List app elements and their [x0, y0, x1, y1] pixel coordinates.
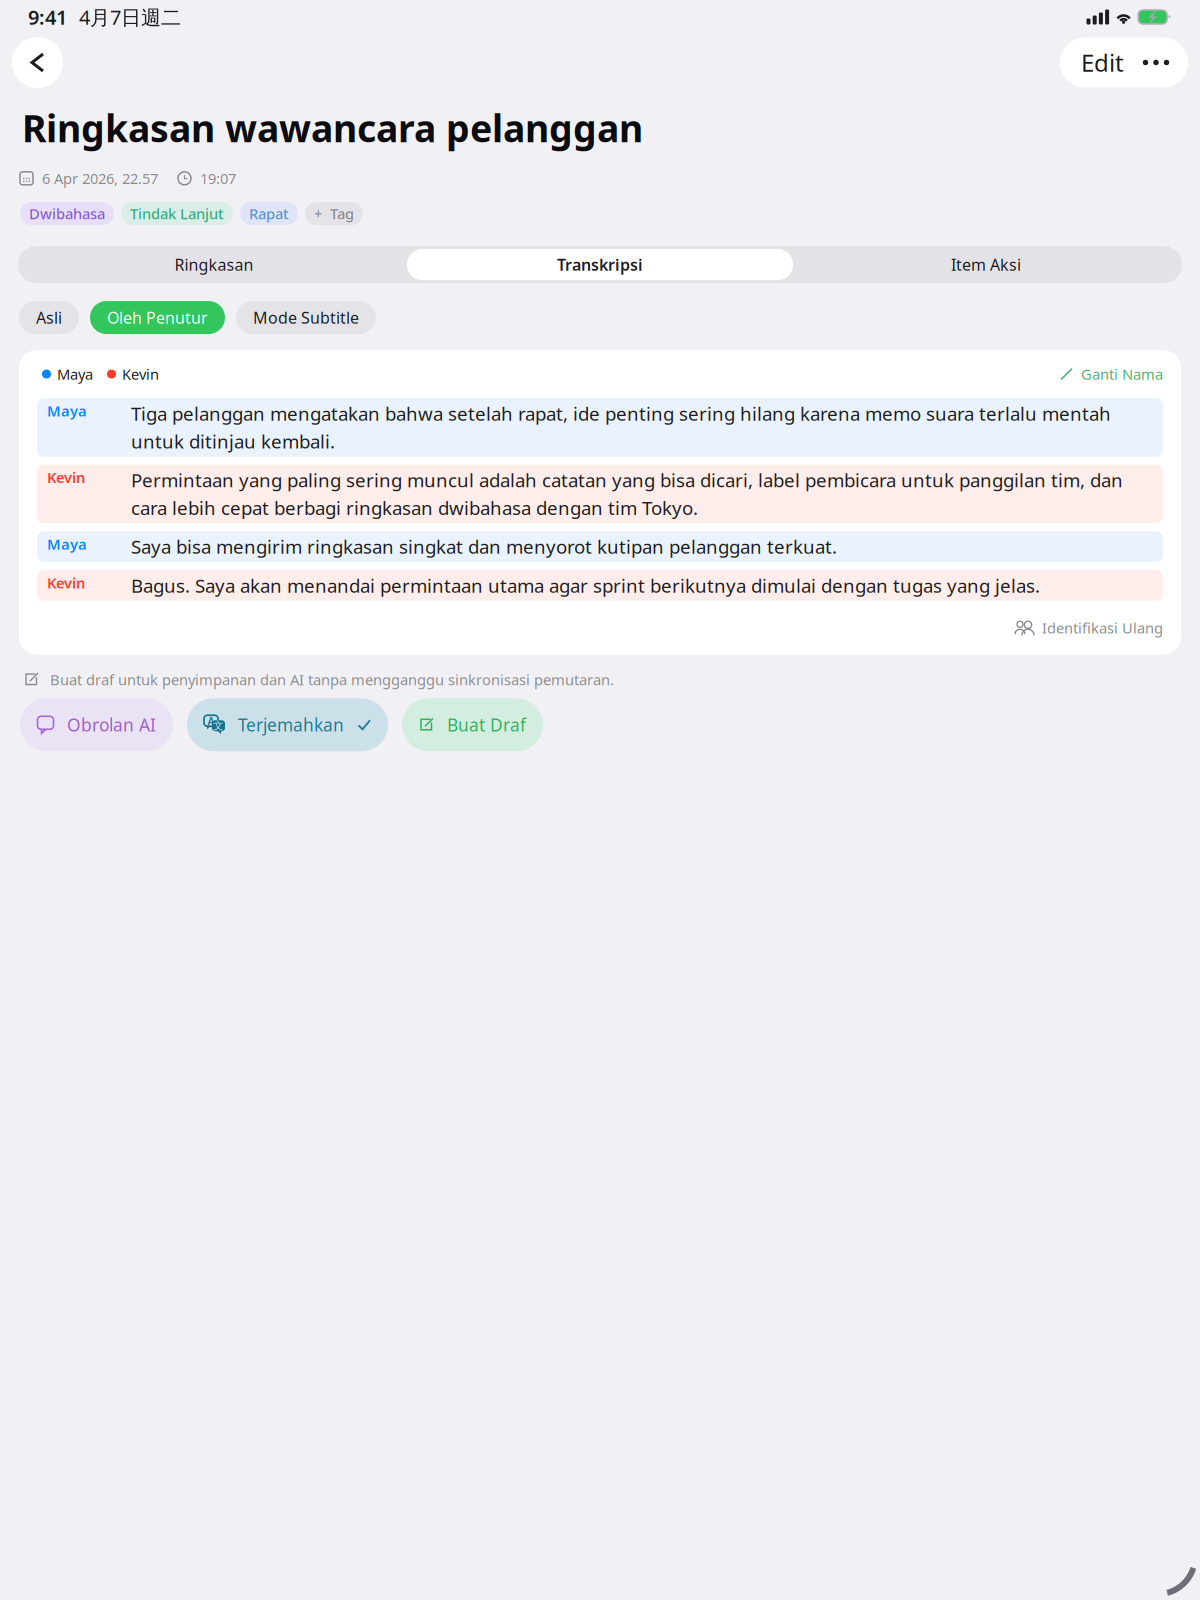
staticText: 6 Apr 2026, 22.57	[42, 169, 158, 188]
staticText: 9:41	[28, 4, 67, 30]
button[interactable]: Transkripsi	[407, 249, 793, 280]
button[interactable]: Item Aksi	[793, 249, 1179, 280]
staticText: Kevin	[47, 468, 85, 487]
button[interactable]: Dwibahasa	[20, 202, 114, 225]
staticText: Buat Draf	[447, 713, 526, 736]
staticText: Edit	[1081, 47, 1124, 78]
staticText: 文	[213, 719, 224, 732]
staticText: Maya	[47, 401, 87, 421]
button[interactable]: Obrolan AI	[20, 698, 173, 751]
staticText: Ganti Nama	[1081, 364, 1163, 384]
staticText: Obrolan AI	[67, 713, 156, 736]
button[interactable]: Mode Subtitle	[236, 301, 376, 334]
staticText: 4月7日週二	[79, 4, 181, 30]
staticText: A	[207, 714, 214, 728]
button[interactable]: Tindak Lanjut	[121, 202, 233, 225]
staticText: Tiga pelanggan mengatakan bahwa setelah …	[131, 401, 1111, 454]
staticText: Rapat	[249, 204, 289, 223]
staticText: Identifikasi Ulang	[1042, 618, 1163, 638]
button[interactable]: Buat Draf	[402, 698, 543, 751]
staticText: Maya	[57, 364, 93, 384]
button[interactable]: + Tag	[305, 202, 363, 225]
staticText: Dwibahasa	[29, 204, 105, 223]
staticText: 19:07	[200, 169, 236, 188]
staticText: Terjemahkan	[238, 713, 344, 736]
button[interactable]: Oleh Penutur	[90, 301, 225, 334]
staticText: Ringkasan	[174, 254, 253, 275]
button[interactable]: Rapat	[240, 202, 298, 225]
staticText: Mode Subtitle	[253, 307, 359, 328]
staticText: Asli	[36, 307, 62, 328]
staticText: Item Aksi	[951, 254, 1021, 275]
staticText: Permintaan yang paling sering muncul ada…	[131, 468, 1123, 520]
staticText: Maya	[47, 534, 87, 554]
button[interactable]: More options	[1140, 37, 1188, 87]
staticText: Saya bisa mengirim ringkasan singkat dan…	[131, 534, 837, 559]
button[interactable]: Ganti Nama	[1059, 364, 1163, 384]
staticText: Ringkasan wawancara pelanggan	[22, 103, 643, 153]
button[interactable]: A	[187, 698, 388, 751]
button[interactable]: Edit	[1060, 37, 1140, 87]
button[interactable]: Asli	[19, 301, 79, 334]
staticText: Tindak Lanjut	[130, 204, 224, 223]
staticText: Bagus. Saya akan menandai permintaan uta…	[131, 573, 1040, 598]
staticText: Oleh Penutur	[107, 307, 208, 328]
staticText: Kevin	[47, 573, 85, 592]
button[interactable]: Identifikasi Ulang	[1014, 618, 1163, 638]
staticText: Buat draf untuk penyimpanan dan AI tanpa…	[50, 670, 614, 689]
button[interactable]: Back	[12, 37, 63, 88]
staticText: Transkripsi	[557, 254, 643, 275]
staticText: + Tag	[314, 204, 354, 223]
staticText: Kevin	[122, 364, 159, 384]
button[interactable]: Ringkasan	[21, 249, 407, 280]
